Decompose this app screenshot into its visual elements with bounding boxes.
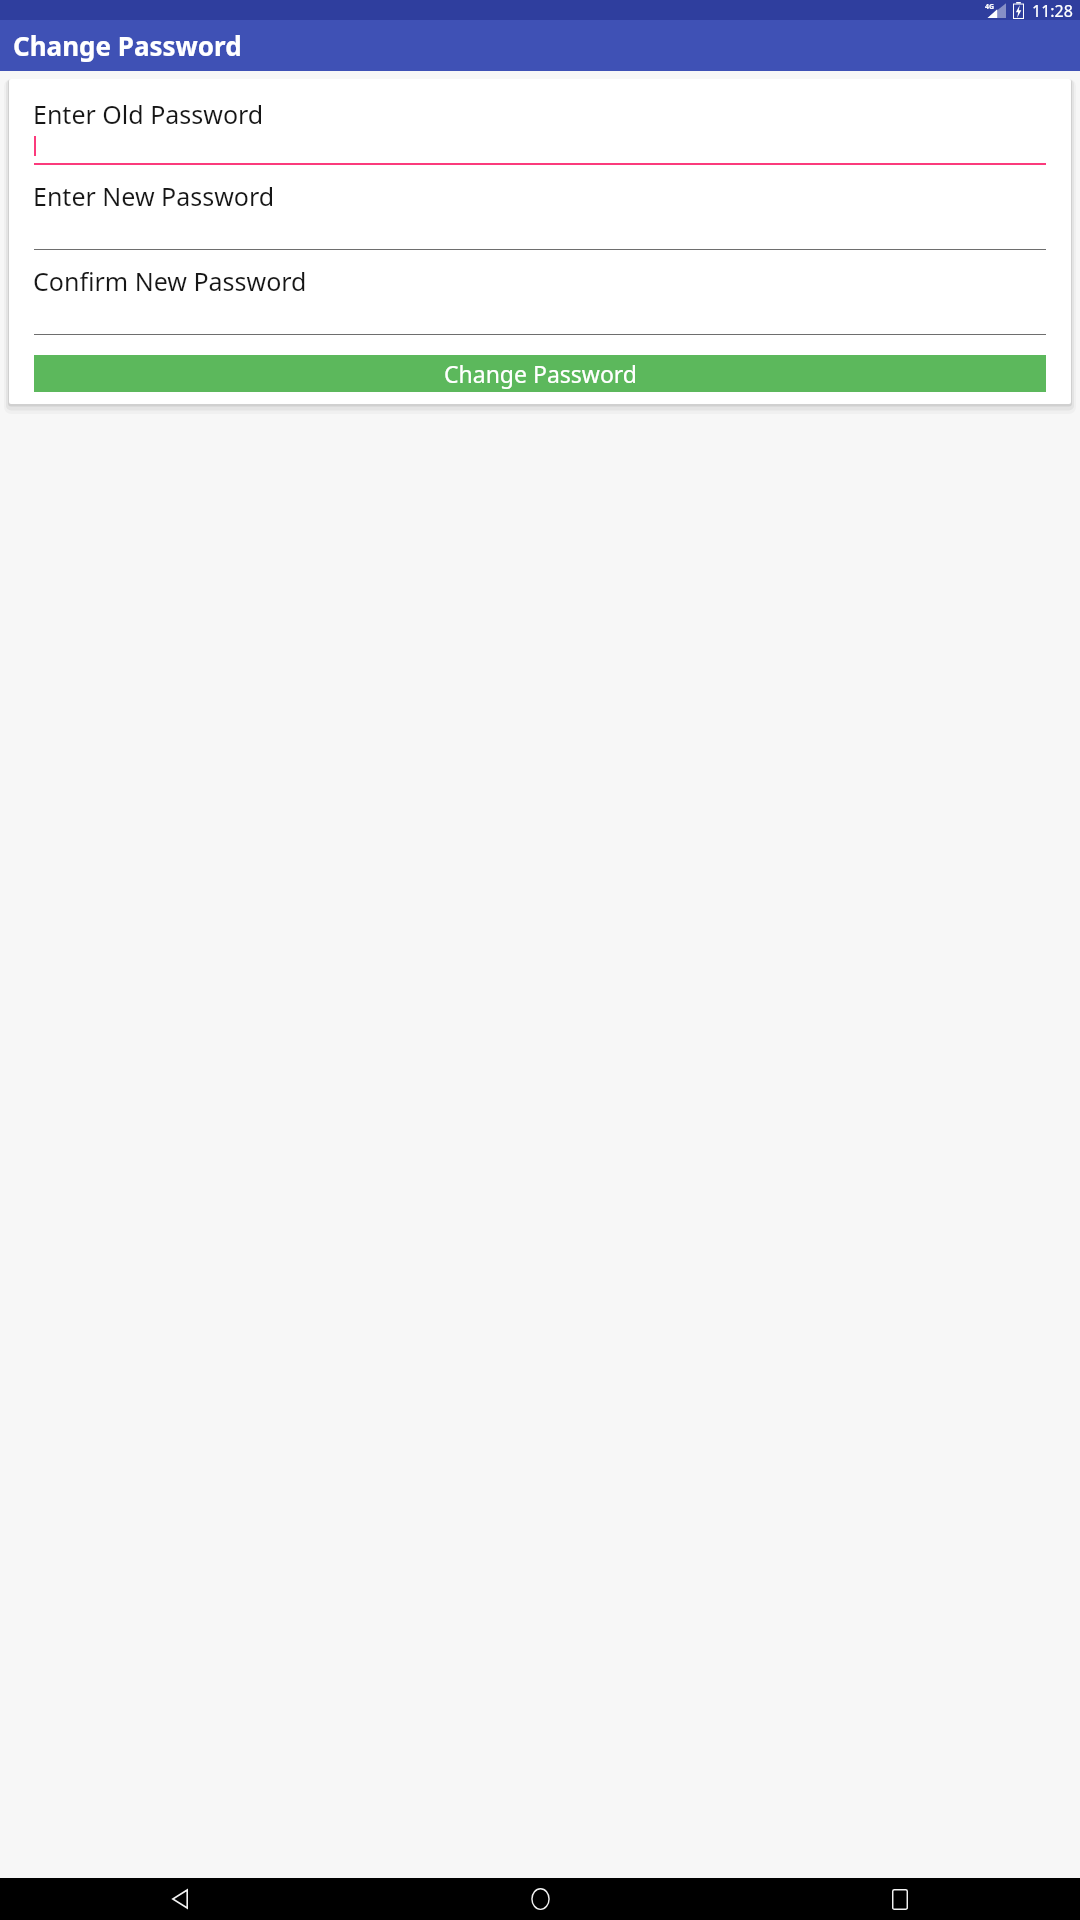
staticText: 4G — [985, 2, 995, 12]
button[interactable]: Change Password — [34, 355, 1046, 392]
staticText: Change Password — [13, 28, 242, 63]
staticText: Enter New Password — [33, 179, 275, 213]
staticText: Change Password — [444, 358, 637, 389]
button[interactable] — [34, 300, 1046, 335]
button[interactable] — [34, 133, 1046, 165]
staticText: Enter Old Password — [33, 97, 264, 131]
button[interactable]: Recent apps — [864, 1878, 936, 1920]
staticText: Confirm New Password — [33, 264, 307, 298]
staticText: 11:28 — [1032, 0, 1073, 20]
button[interactable]: Home — [504, 1878, 576, 1920]
button[interactable]: Back — [144, 1878, 216, 1920]
button[interactable] — [34, 215, 1046, 250]
